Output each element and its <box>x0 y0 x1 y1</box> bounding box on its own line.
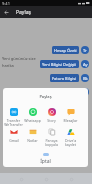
staticText: Drive'a kaydet <box>61 138 80 147</box>
staticText: Hesap Özeti <box>54 48 77 53</box>
staticText: Gmail <box>9 138 19 143</box>
button[interactable]: İptal <box>3 158 88 167</box>
button[interactable]: Back <box>0 6 12 18</box>
button[interactable]: Whatsapp <box>23 108 42 123</box>
button[interactable]: Contact Cn <box>81 88 89 96</box>
button[interactable]: Drive'a kaydet <box>61 128 80 147</box>
button[interactable]: Fatura Bilgisi <box>50 74 79 82</box>
button[interactable]: Contact Tr <box>81 46 89 54</box>
staticText: Notlar <box>27 138 38 143</box>
staticText: Mesajlar <box>63 118 78 123</box>
staticText: Story <box>47 118 56 123</box>
staticText: 9:41 <box>2 1 10 6</box>
staticText: Bk <box>83 76 88 81</box>
staticText: Whatsapp <box>24 118 41 123</box>
button[interactable]: Mesajlar <box>61 108 80 123</box>
staticText: Yeni gününüz size harika hayırlı sabahla… <box>2 56 48 68</box>
button[interactable]: Panoya kopyala <box>42 128 61 147</box>
staticText: Yeni Bilgisi Değişti <box>42 62 77 67</box>
button[interactable]: Contact Bk <box>81 74 89 82</box>
button[interactable]: Story <box>42 108 61 123</box>
staticText: Transfer WeTransfer <box>4 118 23 127</box>
button[interactable]: Gmail <box>4 128 23 143</box>
button[interactable]: Notlar <box>23 128 42 143</box>
button[interactable]: Transfer WeTransfer <box>4 108 23 127</box>
staticText: Panoya kopyala <box>45 138 58 147</box>
button[interactable]: Contact Ay <box>81 60 89 68</box>
staticText: Fatura Bilgisi <box>52 76 77 81</box>
staticText: İptal <box>40 158 51 165</box>
staticText: Paylaş <box>3 94 88 99</box>
staticText: Ay <box>83 62 88 67</box>
staticText: Paylaş <box>16 9 31 16</box>
button[interactable]: Hesap Özeti <box>52 46 79 54</box>
staticText: Tr <box>83 48 87 53</box>
button[interactable]: Yeni Bilgisi Değişti <box>40 60 79 68</box>
